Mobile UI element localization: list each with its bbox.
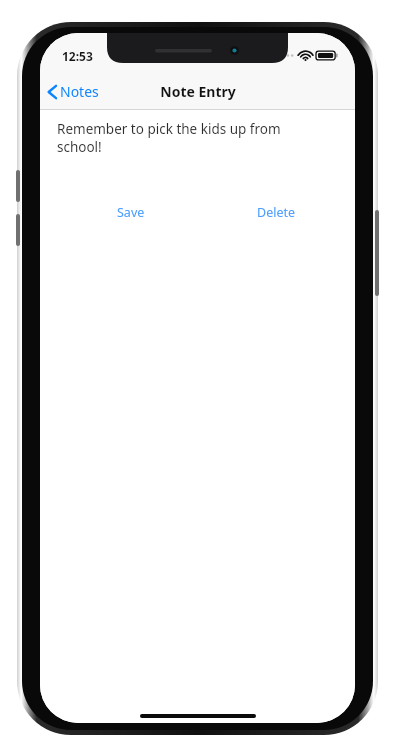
staticText: Save xyxy=(117,204,145,221)
button[interactable]: Save xyxy=(111,200,151,225)
staticText: Delete xyxy=(257,204,296,221)
button[interactable]: Notes xyxy=(40,77,109,106)
staticText: Notes xyxy=(60,82,99,101)
button[interactable]: Delete xyxy=(251,200,302,225)
staticText: Remember to pick the kids up from school… xyxy=(57,120,321,156)
staticText: Note Entry xyxy=(160,82,236,101)
staticText: 12:53 xyxy=(62,48,93,64)
